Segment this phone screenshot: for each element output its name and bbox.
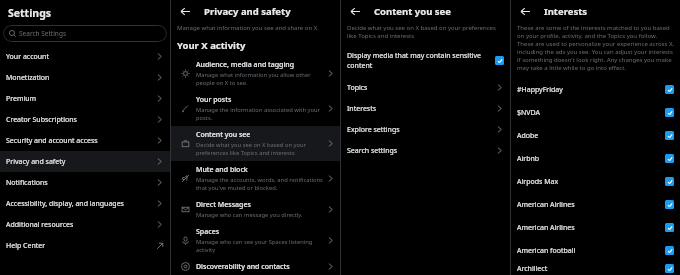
button[interactable]: Direct Messages [171,196,340,223]
staticText: Monetization [6,73,155,83]
staticText: Creator Subscriptions [6,115,155,125]
button[interactable]: Monetization [0,67,170,88]
staticText: Airbnb [517,154,665,164]
staticText: Direct Messages [196,200,251,210]
staticText: #HappyFriday [517,85,665,95]
staticText: Content you see [196,130,251,140]
button[interactable]: Airpods Max [511,170,680,193]
button[interactable]: Mute and block [171,161,340,196]
button[interactable]: Checked [665,131,674,140]
button[interactable]: Checked [665,246,674,255]
button[interactable]: Security and account access [0,130,170,151]
staticText: American Airlines [517,223,665,233]
staticText: Adobe [517,131,665,141]
button[interactable]: Spaces [171,223,340,258]
button[interactable]: Your posts [171,91,340,126]
button[interactable]: Checked [665,154,674,163]
staticText: American Airlines [517,200,665,210]
button[interactable]: Archillect [511,262,680,275]
button[interactable]: Privacy and safety [0,151,170,172]
button[interactable]: Checked [665,108,674,117]
staticText: Explore settings [347,125,495,135]
staticText: Manage what information you see and shar… [177,24,319,32]
button[interactable]: Search settings [341,140,510,161]
staticText: Discoverability and contacts [196,262,290,271]
staticText: Additional resources [6,220,155,230]
button[interactable]: Adobe [511,124,680,147]
button[interactable]: Checked [495,56,504,65]
staticText: Interests [347,104,495,114]
button[interactable]: Premium [0,88,170,109]
button[interactable]: Creator Subscriptions [0,109,170,130]
button[interactable]: Airbnb [511,147,680,170]
staticText: Decide what you see on X based on your p… [347,24,504,40]
staticText: Manage who can message you directly. [196,211,303,219]
button[interactable]: Help Center [0,235,170,256]
button[interactable]: #HappyFriday [511,78,680,101]
button[interactable]: Additional resources [0,214,170,235]
staticText: Settings [8,6,52,20]
staticText: Manage what information you allow other … [196,71,323,87]
button[interactable]: Interests [341,98,510,119]
staticText: Security and account access [6,136,155,146]
staticText: Display media that may contain sensitive… [347,51,492,70]
button[interactable]: Checked [665,200,674,209]
staticText: Your account [6,52,155,62]
staticText: Audience, media and tagging [196,60,295,70]
staticText: $NVDA [517,108,665,118]
button[interactable]: Notifications [0,172,170,193]
button[interactable]: Accessibility, display, and languages [0,193,170,214]
button[interactable]: Back [516,2,534,20]
staticText: Privacy and safety [6,157,155,167]
staticText: Manage the accounts, words, and notifica… [196,176,323,192]
button[interactable]: Back [176,2,194,20]
staticText: American football [517,246,665,256]
staticText: Accessibility, display, and languages [6,199,155,209]
button[interactable]: American football [511,239,680,262]
button[interactable]: Your account [0,46,170,67]
button[interactable]: Audience, media and tagging [171,56,340,91]
staticText: Help Center [6,241,156,251]
staticText: Your posts [196,95,232,105]
staticText: Your X activity [177,39,246,52]
staticText: Premium [6,94,155,104]
button[interactable]: Checked [665,85,674,94]
staticText: Topics [347,83,495,93]
staticText: Notifications [6,178,155,188]
button[interactable]: Topics [341,77,510,98]
button[interactable]: Checked [665,223,674,232]
button[interactable]: Explore settings [341,119,510,140]
staticText: Spaces [196,227,220,237]
button[interactable]: Discoverability and contacts [171,258,340,275]
staticText: Manage the information associated with y… [196,106,323,122]
button[interactable]: American Airlines [511,193,680,216]
staticText: Mute and block [196,165,248,175]
staticText: Search Settings [19,29,66,38]
button[interactable]: Back [346,2,364,20]
staticText: Manage who can see your Spaces listening… [196,238,323,254]
staticText: Content you see [374,5,451,18]
button[interactable]: Display media that may contain sensitive… [341,48,510,73]
button[interactable]: Checked [665,177,674,186]
staticText: Archillect [517,264,665,274]
button[interactable]: $NVDA [511,101,680,124]
staticText: Interests [544,5,588,18]
button[interactable]: Checked [665,264,674,273]
staticText: Search settings [347,146,495,156]
staticText: Airpods Max [517,177,665,187]
button[interactable]: American Airlines [511,216,680,239]
button[interactable]: Search Settings [3,25,167,42]
staticText: These are some of the interests matched … [517,24,675,72]
staticText: Privacy and safety [204,5,291,18]
button[interactable]: Content you see [171,126,340,161]
staticText: Decide what you see on X based on your p… [196,141,323,157]
